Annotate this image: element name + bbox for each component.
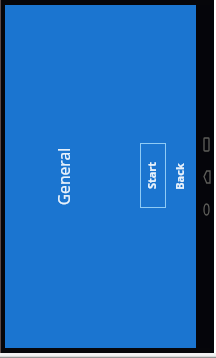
staticText: General [52,101,73,251]
button[interactable]: Back [202,166,211,187]
button[interactable]: Recent apps [202,134,211,155]
button[interactable]: Back [166,156,191,196]
button[interactable]: Home [202,199,211,220]
staticText: Back [171,101,186,251]
button[interactable]: Start [140,143,166,208]
staticText: Start [143,100,158,250]
